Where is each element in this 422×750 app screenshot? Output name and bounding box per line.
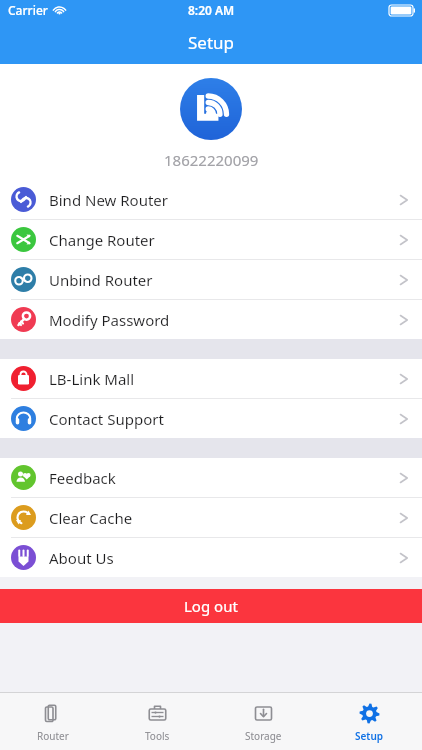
staticText: Storage <box>245 729 282 743</box>
button[interactable]: Modify Password <box>0 300 422 339</box>
staticText: 18622220099 <box>164 150 259 170</box>
button[interactable]: About Us <box>0 538 422 577</box>
button[interactable]: LB-Link Mall <box>0 359 422 399</box>
button[interactable]: Bind New Router <box>0 180 422 220</box>
staticText: Log out <box>184 596 238 616</box>
button[interactable]: Unbind Router <box>0 260 422 300</box>
staticText: Feedback <box>49 468 399 488</box>
button[interactable]: Log out <box>0 589 422 623</box>
staticText: Modify Password <box>49 310 399 330</box>
button[interactable]: Clear Cache <box>0 498 422 538</box>
button[interactable]: Contact Support <box>0 399 422 438</box>
staticText: LB-Link Mall <box>49 369 399 389</box>
button[interactable]: Tools <box>105 693 210 750</box>
staticText: Contact Support <box>49 409 399 429</box>
staticText: Clear Cache <box>49 508 399 528</box>
staticText: Bind New Router <box>49 190 399 210</box>
staticText: Change Router <box>49 230 399 250</box>
staticText: Setup <box>355 729 384 743</box>
button[interactable]: Change Router <box>0 220 422 260</box>
staticText: Setup <box>188 31 235 54</box>
button[interactable]: Storage <box>210 693 316 750</box>
button[interactable]: Feedback <box>0 458 422 498</box>
staticText: Tools <box>145 729 170 743</box>
button[interactable]: Router <box>0 693 105 750</box>
staticText: About Us <box>49 548 399 568</box>
staticText: Unbind Router <box>49 270 399 290</box>
staticText: Router <box>37 729 69 743</box>
staticText: 8:20 AM <box>188 2 235 18</box>
button[interactable]: Setup <box>316 693 422 750</box>
staticText: Carrier <box>8 2 48 18</box>
